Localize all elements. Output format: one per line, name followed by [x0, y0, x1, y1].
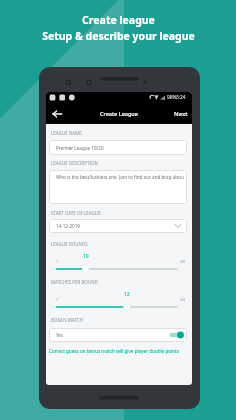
staticText: LEAGUE DESCRIPTION: [51, 160, 98, 166]
staticText: LEAGUE ROUNDS: [51, 241, 88, 247]
button[interactable]: Back: [46, 103, 67, 124]
button[interactable]: Next: [169, 103, 192, 124]
button[interactable]: [52, 264, 182, 274]
staticText: Who is the best/luckiest one. Join to fi…: [56, 174, 187, 180]
staticText: MATCHES PER ROUND: [51, 279, 98, 285]
staticText: LEAGUE NAME: [51, 130, 82, 136]
staticText: 3:24: [176, 94, 186, 101]
staticText: BONUS MATCH: [51, 317, 84, 323]
staticText: 98%: [167, 94, 177, 101]
button[interactable]: Yes: [49, 328, 187, 342]
staticText: Premier League 19/20: [56, 145, 104, 151]
staticText: START DATE OF LEAGUE: [51, 210, 101, 216]
staticText: 38: [180, 259, 185, 265]
staticText: 14-12-2019: [56, 223, 80, 229]
staticText: 20: [180, 297, 185, 303]
staticText: Create league: [82, 13, 155, 27]
staticText: Create League: [100, 110, 138, 117]
staticText: 1: [56, 297, 59, 303]
staticText: 10: [83, 253, 89, 260]
staticText: Yes: [56, 332, 64, 338]
staticText: Setup & describe your league: [42, 29, 195, 43]
button[interactable]: [52, 302, 182, 312]
staticText: 1: [56, 259, 59, 265]
staticText: Correct guess on bonus match will give p…: [49, 348, 179, 354]
staticText: 12: [124, 291, 130, 298]
staticText: Next: [174, 110, 188, 118]
